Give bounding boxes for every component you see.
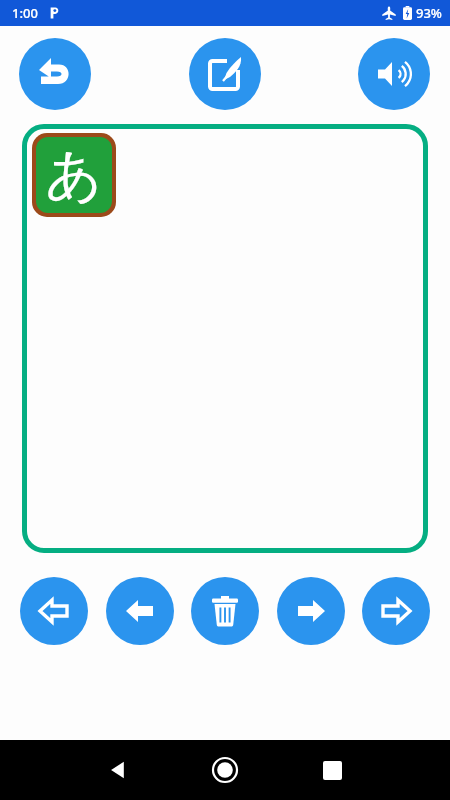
staticText: 93% [416, 4, 442, 22]
button[interactable]: あ [36, 137, 112, 213]
button[interactable]: Previous page [20, 577, 88, 645]
button[interactable]: Undo [19, 38, 91, 110]
button[interactable]: Delete [191, 577, 259, 645]
button[interactable]: Speak [358, 38, 430, 110]
staticText: あ [45, 140, 103, 211]
button[interactable]: Next [277, 577, 345, 645]
button[interactable]: Home [212, 757, 238, 783]
button[interactable]: Recents [323, 761, 342, 780]
staticText: 1:00 [12, 4, 38, 22]
button[interactable]: Previous [106, 577, 174, 645]
button[interactable]: あ [22, 124, 428, 553]
button[interactable]: Write [189, 38, 261, 110]
button[interactable]: Next page [362, 577, 430, 645]
button[interactable]: Back [108, 759, 130, 781]
